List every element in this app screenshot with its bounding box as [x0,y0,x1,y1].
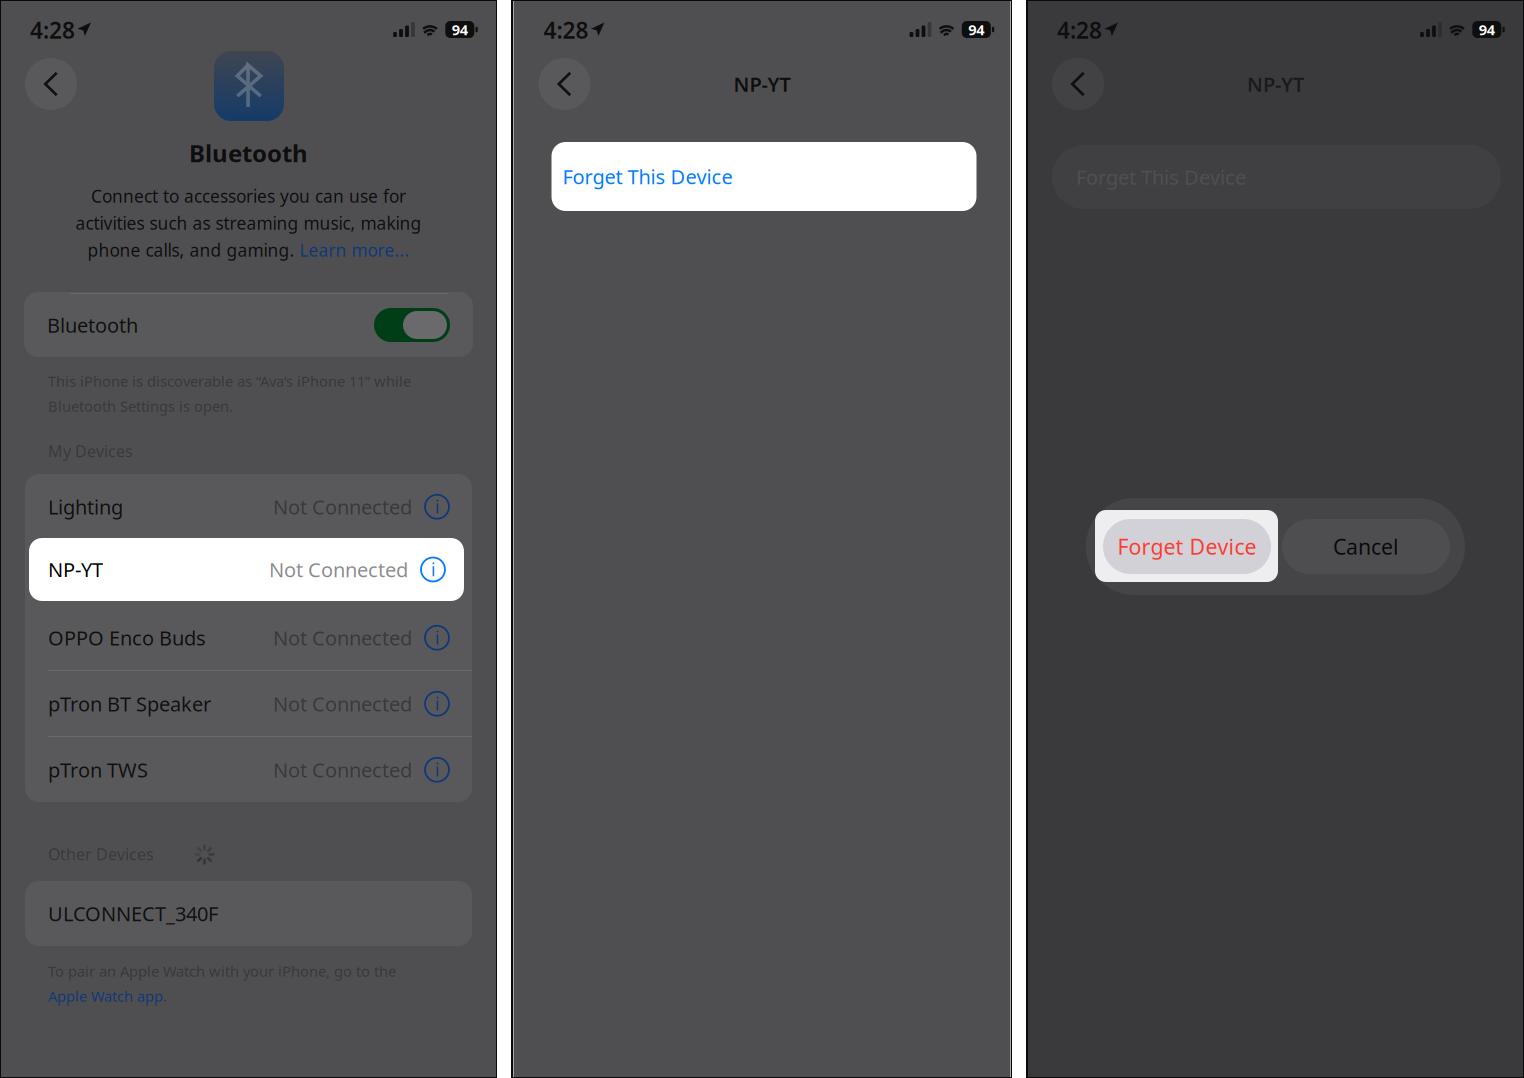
staticText: i [435,495,439,518]
staticText: Connect to accessories you can use for [91,184,406,207]
staticText: To pair an Apple Watch with your iPhone,… [48,961,396,981]
staticText: Not Connected [273,756,412,783]
staticText: Learn more... [299,238,409,261]
staticText: Bluetooth [189,137,308,169]
staticText: Forget This Device [1076,164,1246,190]
staticText: My Devices [48,440,133,462]
staticText: Not Connected [273,624,412,651]
button[interactable]: Lighting [25,474,472,539]
button[interactable]: ULCONNECT_340F [25,881,472,946]
staticText: phone calls, and gaming. [87,238,299,261]
staticText: NP-YT [48,556,103,583]
staticText: Bluetooth [47,312,138,338]
button[interactable]: NP-YT [29,538,464,601]
staticText: ULCONNECT_340F [48,900,218,927]
staticText: Cancel [1333,532,1399,561]
staticText: 94 [1479,20,1495,39]
staticText: pTron BT Speaker [48,690,211,717]
staticText: Other Devices [48,843,154,865]
staticText: i [435,692,439,715]
staticText: . [163,986,167,1006]
staticText: NP-YT [1247,71,1304,97]
button[interactable]: Forget Device [1103,519,1271,574]
staticText: Not Connected [273,690,412,717]
staticText: Not Connected [269,556,408,583]
button[interactable]: pTron BT Speaker [25,671,472,736]
staticText: 4:28 [543,15,588,45]
button[interactable]: Bluetooth [24,293,473,357]
staticText: i [431,558,435,581]
staticText: This iPhone is discoverable as “Ava’s iP… [48,371,411,391]
button[interactable]: Back [538,58,590,110]
staticText: 94 [968,20,984,39]
button[interactable]: Cancel [1282,519,1450,574]
staticText: NP-YT [733,71,790,97]
button[interactable]: Learn more... [299,238,409,261]
staticText: Not Connected [273,493,412,520]
staticText: 4:28 [1057,15,1102,45]
staticText: pTron TWS [48,756,148,783]
staticText: Forget Device [1117,532,1256,561]
staticText: activities such as streaming music, maki… [75,211,421,234]
button[interactable]: OPPO Enco Buds [25,605,472,670]
staticText: Bluetooth Settings is open. [48,396,233,416]
staticText: Forget This Device [562,163,732,190]
staticText: OPPO Enco Buds [48,624,206,651]
button[interactable]: Apple Watch app [48,986,163,1006]
staticText: Lighting [48,493,123,520]
button[interactable]: pTron TWS [25,737,472,802]
button[interactable]: Back [1052,58,1104,110]
staticText: Apple Watch app [48,986,163,1006]
staticText: i [435,626,439,649]
staticText: i [435,758,439,781]
button[interactable]: Back [25,58,77,110]
staticText: 4:28 [30,15,75,45]
button[interactable]: Forget This Device [551,142,976,211]
staticText: 94 [452,20,468,39]
